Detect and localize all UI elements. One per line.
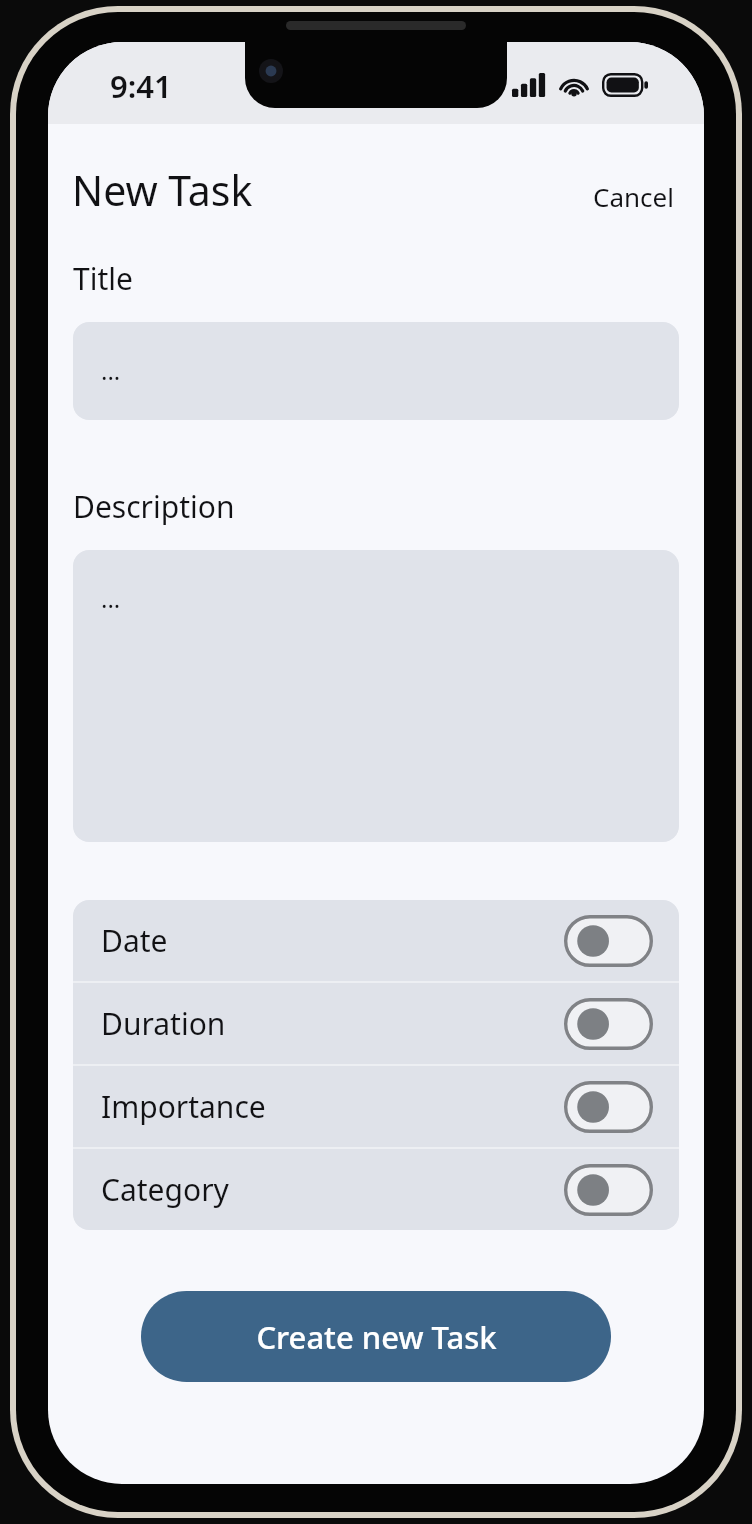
staticText: Duration [101, 1003, 226, 1044]
staticText: Title [73, 258, 133, 299]
button[interactable]: Toggle [564, 998, 653, 1050]
button[interactable]: Toggle [564, 1081, 653, 1133]
button[interactable]: Cancel [589, 175, 678, 218]
staticText: Create new Task [256, 1316, 497, 1358]
staticText: 9:41 [110, 65, 172, 107]
button[interactable]: ... [73, 322, 679, 420]
button[interactable]: Toggle [564, 915, 653, 967]
staticText: Importance [101, 1086, 266, 1127]
button[interactable]: Category [73, 1149, 679, 1230]
button[interactable]: Importance [73, 1066, 679, 1147]
staticText: Description [73, 486, 235, 527]
staticText: Category [101, 1169, 229, 1210]
staticText: Cancel [593, 179, 674, 214]
staticText: New Task [72, 162, 253, 218]
button[interactable]: Duration [73, 983, 679, 1064]
button[interactable]: Toggle [564, 1164, 653, 1216]
button[interactable]: Date [73, 900, 679, 981]
staticText: ... [101, 582, 121, 615]
staticText: ... [101, 354, 121, 387]
button[interactable]: Create new Task [141, 1291, 611, 1382]
staticText: Date [101, 920, 168, 961]
